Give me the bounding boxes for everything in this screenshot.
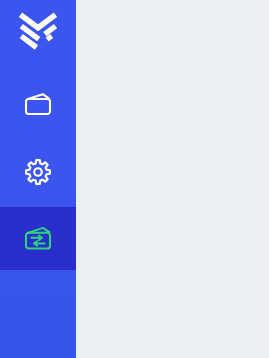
button[interactable]: Wallet (0, 73, 76, 136)
button[interactable]: Settings (0, 140, 76, 203)
button[interactable]: Home (0, 0, 76, 60)
button[interactable]: Transactions (0, 207, 76, 270)
